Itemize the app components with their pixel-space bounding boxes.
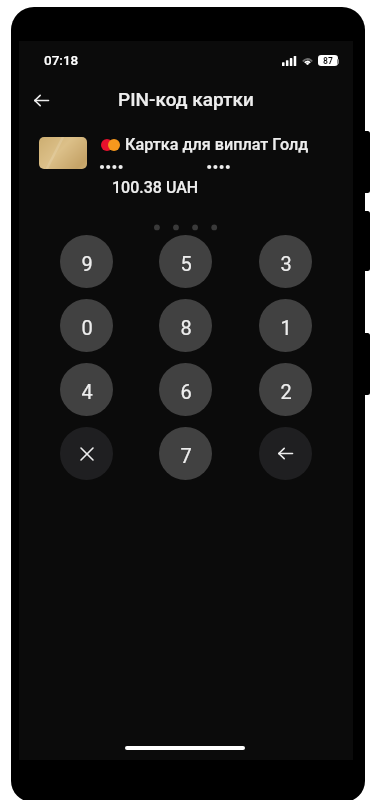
staticText: 8: [180, 316, 192, 339]
staticText: PIN-код картки: [118, 88, 254, 110]
staticText: 3: [280, 252, 292, 275]
staticText: Картка для виплат Голд: [125, 135, 309, 154]
button[interactable]: 2: [259, 363, 312, 416]
button[interactable]: 4: [60, 363, 113, 416]
button[interactable]: Backspace: [259, 427, 312, 480]
button[interactable]: 0: [60, 299, 113, 352]
staticText: 87: [323, 56, 333, 66]
staticText: 1: [280, 316, 292, 339]
staticText: 7: [180, 444, 192, 467]
button[interactable]: 3: [259, 235, 312, 288]
staticText: 4: [81, 380, 93, 403]
staticText: 0: [81, 316, 93, 339]
button[interactable]: 5: [159, 235, 212, 288]
button[interactable]: 6: [159, 363, 212, 416]
button[interactable]: 9: [60, 235, 113, 288]
button[interactable]: 8: [159, 299, 212, 352]
button[interactable]: Clear: [60, 427, 113, 480]
staticText: 5: [180, 252, 192, 275]
button[interactable]: 1: [259, 299, 312, 352]
button[interactable]: Back: [25, 84, 57, 116]
staticText: 07:18: [44, 52, 79, 68]
staticText: 100.38 UAH: [112, 178, 199, 197]
staticText: 2: [280, 380, 292, 403]
staticText: 9: [81, 252, 93, 275]
button[interactable]: 7: [159, 427, 212, 480]
staticText: 6: [180, 380, 192, 403]
